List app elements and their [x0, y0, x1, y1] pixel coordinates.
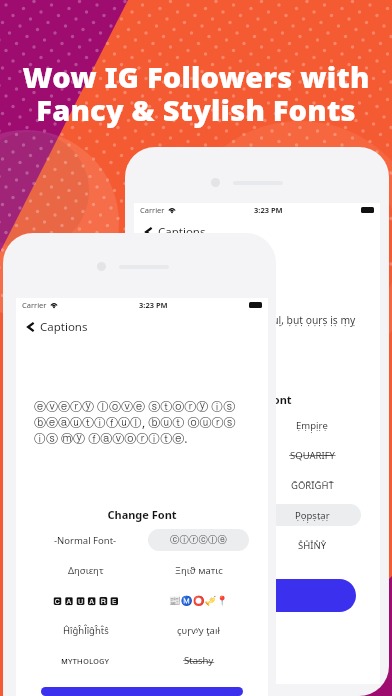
staticText: Carrier	[140, 205, 165, 215]
button[interactable]: Back	[141, 224, 208, 240]
button[interactable]: -Normal Font-	[29, 525, 142, 555]
button[interactable]: çυɼᴠʸy ţaıł	[148, 619, 249, 641]
staticText: 🅲 🅰 🆄 🅰 🆁 🅴	[53, 594, 119, 607]
button[interactable]: Mythology	[147, 530, 257, 560]
button[interactable]: Ancient	[147, 440, 257, 470]
staticText: Wow IG Followers with Fancy & Stylish Fo…	[0, 57, 392, 129]
staticText: 📰Ⓜ⭕🎺📍	[169, 595, 229, 606]
staticText: ḠŌR̄ĪḠH̄T̄	[291, 479, 334, 492]
button[interactable]: 📰Ⓜ⭕🎺📍	[148, 589, 249, 611]
staticText: P̣ọp̣ṣṭạṛ	[295, 509, 330, 522]
button[interactable]	[159, 579, 356, 612]
staticText: S̊H̊I̊N̊Y̊	[298, 539, 327, 552]
staticText: 3:23 PM	[254, 205, 283, 215]
staticText: Ξηιϑ матιс	[175, 564, 223, 577]
button[interactable]: Back	[23, 319, 90, 335]
staticText: Carrier	[22, 300, 47, 310]
staticText: 3:23 PM	[139, 300, 168, 310]
staticText: S̶t̶a̶s̶h̶y̶	[184, 654, 214, 667]
button[interactable]: Ĥîĝĥl̂îĝĥt̂ŝ	[29, 615, 142, 645]
staticText: Ĥîĝĥl̂îĝĥt̂ŝ	[63, 624, 109, 637]
button[interactable]: P̣ọp̣ṣṭạṛ	[263, 504, 361, 526]
button[interactable]: Δησιεητ	[29, 555, 142, 585]
button[interactable]: S̶t̶a̶s̶h̶y̶	[148, 649, 249, 671]
staticText: ⓒⓘⓡⓒⓛⓔ	[170, 534, 227, 546]
other: Back	[25, 321, 37, 333]
staticText: S̶Q̶U̶A̶R̶I̶F̶Y̶	[290, 449, 335, 462]
staticText: ⓔⓥⓔⓡⓨ ⓛⓞⓥⓔ ⓢⓣⓞⓡⓨ ⓘⓢ ⓑⓔⓐⓤⓣⓘⓕⓤⓛ, ⓑⓤⓣ ⓞⓤⓡⓢ …	[34, 398, 254, 446]
staticText: -Normal Font-	[171, 419, 234, 432]
button[interactable]: ḠŌR̄ĪḠH̄T̄	[263, 474, 361, 496]
staticText: Change Font	[222, 392, 292, 407]
button[interactable]: S̶Q̶U̶A̶R̶I̶F̶Y̶	[263, 444, 361, 466]
staticText: Ẹṃp̣ịṛẹ	[296, 419, 328, 432]
staticText: ᴍʏᴛʜᴏʟᴏɢʏ	[61, 654, 110, 667]
staticText: Mythology	[178, 539, 226, 552]
button[interactable]: S̊H̊I̊N̊Y̊	[263, 534, 361, 556]
staticText: Change Font	[107, 507, 177, 522]
button[interactable]: ⓒⓘⓡⓒⓛⓔ	[148, 529, 249, 551]
button[interactable]: Ξηιϑ матιс	[148, 559, 249, 581]
button[interactable]: Ẹṃp̣ịṛẹ	[263, 414, 361, 436]
staticText: Δησιεητ	[68, 564, 104, 577]
button[interactable]	[41, 687, 243, 696]
staticText: ẹṿẹṛỵ ḷọṿẹ ṣṭọṛỵ ịṣ ḅẹ…	[149, 313, 370, 341]
button[interactable]: Highlights	[147, 500, 257, 530]
other: Back	[143, 226, 155, 238]
staticText: Captions	[40, 319, 88, 335]
staticText: -Normal Font-	[54, 534, 117, 547]
button[interactable]: 🅲 🅰 🆄 🅰 🆁 🅴	[29, 585, 142, 615]
button[interactable]: ᴍʏᴛʜᴏʟᴏɢʏ	[29, 645, 142, 675]
staticText: Captions	[158, 224, 206, 240]
staticText: çυɼᴠʸy ţaıł	[177, 624, 220, 637]
button[interactable]: -Normal Font-	[147, 410, 257, 440]
